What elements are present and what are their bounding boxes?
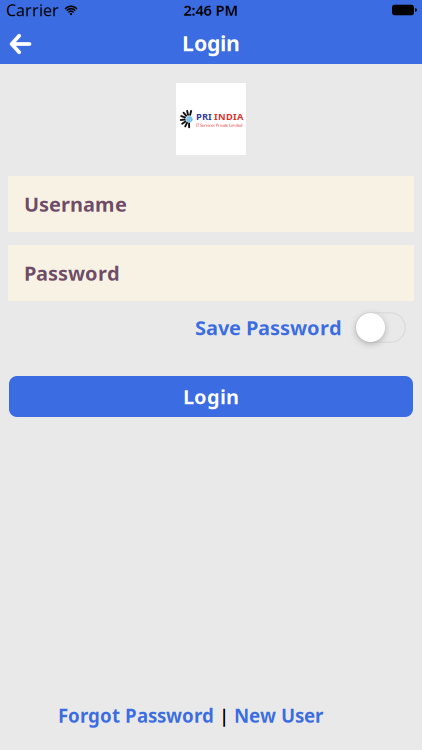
staticText: PRI: [196, 110, 212, 122]
staticText: Forgot Password: [58, 703, 214, 728]
staticText: Carrier: [6, 0, 59, 21]
staticText: IT Services Private Limited: [196, 122, 242, 128]
staticText: Save Password: [195, 314, 342, 341]
button[interactable]: Save Password: [342, 312, 406, 343]
button[interactable]: Password: [8, 245, 414, 301]
staticText: 2:46 PM: [183, 0, 238, 20]
staticText: INDIA: [214, 110, 243, 122]
button[interactable]: New User: [234, 703, 323, 728]
button[interactable]: Forgot Password: [58, 703, 214, 728]
staticText: Password: [24, 260, 120, 286]
button[interactable]: Login: [9, 376, 413, 417]
button[interactable]: Back: [0, 19, 31, 64]
staticText: Username: [24, 191, 127, 217]
button[interactable]: Username: [8, 176, 414, 232]
staticText: |: [214, 703, 234, 728]
staticText: New User: [234, 703, 323, 728]
staticText: Login: [182, 29, 240, 57]
staticText: Login: [183, 383, 239, 410]
